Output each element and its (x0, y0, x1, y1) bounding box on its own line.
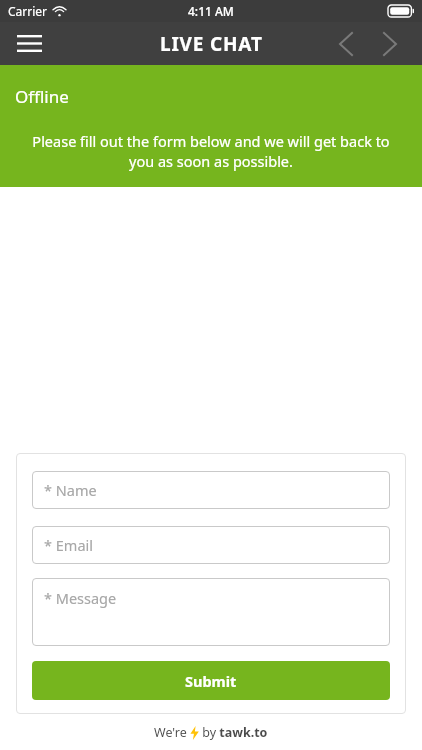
button[interactable]: Forward (368, 22, 412, 65)
button[interactable]: We're (154, 724, 268, 741)
staticText: * Message (44, 588, 117, 608)
staticText: We're (154, 724, 190, 741)
staticText: * Email (44, 535, 93, 555)
button[interactable]: * Message (32, 578, 390, 646)
button[interactable]: Back (324, 22, 368, 65)
staticText: * Name (44, 480, 97, 500)
staticText: LIVE CHAT (160, 31, 263, 57)
staticText: Please fill out the form below and we wi… (22, 131, 400, 171)
staticText: Offline (15, 85, 69, 108)
staticText: 4:11 AM (188, 3, 234, 19)
button[interactable]: Submit (32, 661, 390, 700)
staticText: Submit (185, 671, 237, 691)
button[interactable]: * Email (32, 526, 390, 564)
staticText: by tawk.to (199, 724, 268, 741)
button[interactable]: * Name (32, 471, 390, 509)
button[interactable]: Menu (0, 22, 58, 65)
staticText: Carrier (8, 3, 48, 19)
